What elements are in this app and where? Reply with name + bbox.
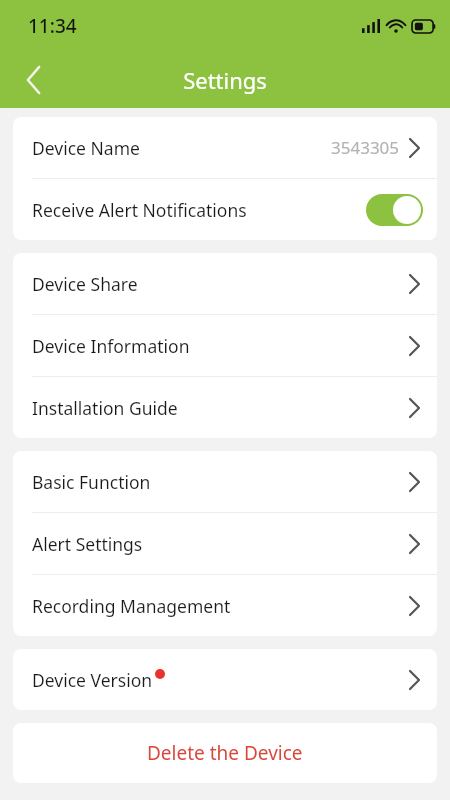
button[interactable]: Recording Management (13, 575, 437, 636)
staticText: Recording Management (32, 594, 231, 618)
button[interactable]: Alert Settings (13, 513, 437, 574)
staticText: Delete the Device (147, 740, 303, 766)
button[interactable]: Receive Alert Notifications toggle (366, 194, 423, 226)
staticText: 11:34 (28, 13, 77, 39)
button[interactable]: Device Information (13, 315, 437, 376)
button[interactable]: Receive Alert Notifications (13, 179, 437, 240)
staticText: Device Version (32, 668, 153, 692)
staticText: Device Name (32, 136, 140, 160)
staticText: Installation Guide (32, 396, 178, 420)
button[interactable]: Device Version (13, 649, 437, 710)
staticText: Settings (183, 65, 267, 95)
staticText: Device Share (32, 272, 138, 296)
staticText: Basic Function (32, 470, 151, 494)
staticText: Device Information (32, 334, 190, 358)
button[interactable]: Device Name (13, 117, 437, 178)
staticText: 3543305 (331, 136, 400, 159)
button[interactable]: Device Share (13, 253, 437, 314)
button[interactable]: Basic Function (13, 451, 437, 512)
button[interactable]: Back (12, 58, 56, 102)
staticText: Alert Settings (32, 532, 143, 556)
button[interactable]: Installation Guide (13, 377, 437, 438)
staticText: Receive Alert Notifications (32, 198, 247, 222)
button[interactable]: Delete the Device (13, 723, 437, 783)
